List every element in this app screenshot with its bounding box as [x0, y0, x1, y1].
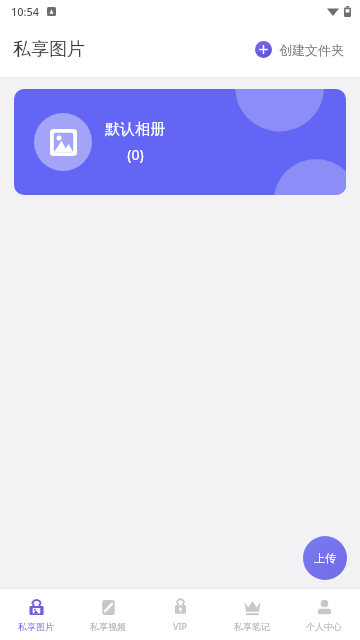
- staticText: 私享笔记: [234, 621, 270, 632]
- button[interactable]: 默认相册: [14, 89, 346, 195]
- button[interactable]: 上传: [303, 536, 347, 580]
- staticText: 上传: [314, 551, 336, 565]
- staticText: 私享图片: [13, 38, 85, 61]
- button[interactable]: 私享笔记: [216, 589, 288, 640]
- staticText: 个人中心: [306, 621, 342, 632]
- staticText: 私享视频: [90, 621, 126, 632]
- button[interactable]: 私享图片: [0, 589, 72, 640]
- staticText: 创建文件夹: [279, 42, 344, 58]
- staticText: 10:54: [11, 4, 40, 19]
- staticText: 私享图片: [18, 621, 54, 632]
- button[interactable]: VIP: [144, 589, 216, 640]
- staticText: 默认相册: [105, 120, 165, 139]
- staticText: VIP: [173, 620, 187, 632]
- staticText: (0): [127, 145, 144, 164]
- button[interactable]: 个人中心: [288, 589, 360, 640]
- button[interactable]: 私享视频: [72, 589, 144, 640]
- button[interactable]: 创建文件夹: [251, 36, 348, 63]
